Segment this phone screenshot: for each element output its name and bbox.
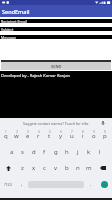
staticText: u [70, 132, 74, 140]
staticText: y [59, 132, 63, 140]
button[interactable]: a [6, 144, 17, 160]
button[interactable]: 9 [88, 128, 99, 144]
button[interactable]: Subject [0, 27, 112, 31]
staticText: r [37, 132, 40, 140]
staticText: c [43, 164, 46, 172]
staticText: d [32, 148, 36, 156]
staticText: 6 [60, 130, 62, 134]
staticText: Recipient Email [1, 19, 27, 23]
staticText: 1 [5, 130, 7, 134]
button[interactable]: . [85, 176, 96, 192]
button[interactable]: h [61, 144, 72, 160]
button[interactable]: 6 [55, 128, 66, 144]
staticText: q [4, 132, 8, 140]
staticText: v [54, 164, 58, 172]
staticText: f [43, 148, 46, 156]
staticText: 9 [93, 130, 95, 134]
button[interactable]: c [39, 160, 50, 176]
button[interactable]: 0 [99, 128, 110, 144]
staticText: 7 [71, 130, 73, 134]
button[interactable]: b [61, 160, 72, 176]
button[interactable]: Message [0, 35, 112, 39]
staticText: Subject [1, 27, 14, 31]
staticText: 3 [27, 130, 29, 134]
staticText: g [54, 148, 58, 156]
button[interactable]: 3 [22, 128, 33, 144]
button[interactable]: f [39, 144, 50, 160]
staticText: t [48, 132, 51, 140]
button[interactable]: z [17, 160, 28, 176]
button[interactable]: d [28, 144, 39, 160]
staticText: i [82, 132, 84, 140]
staticText: , [21, 181, 23, 188]
staticText: x [32, 164, 36, 172]
staticText: b [65, 164, 69, 172]
button[interactable]: k [83, 144, 94, 160]
staticText: 8 [82, 130, 84, 134]
staticText: j [77, 148, 79, 156]
button[interactable]: Voice input [100, 120, 106, 126]
staticText: p [103, 132, 107, 140]
staticText: l [99, 148, 101, 156]
staticText: k [87, 148, 91, 156]
button[interactable]: 5 [44, 128, 55, 144]
button[interactable]: 1 [0, 128, 11, 144]
button[interactable]: Recipient Email [0, 19, 112, 23]
staticText: w [14, 132, 19, 140]
button[interactable]: n [72, 160, 83, 176]
button[interactable]: ?123 [0, 176, 16, 192]
staticText: Message [1, 35, 16, 39]
staticText: Developed by - Rajesh Kumar Ranjan [1, 73, 70, 78]
staticText: 5 [49, 130, 51, 134]
staticText: SEND [51, 64, 62, 69]
staticText: SendEmail [2, 8, 30, 15]
button[interactable]: SEND [1, 60, 111, 70]
staticText: a [10, 148, 14, 156]
staticText: 2 [16, 130, 18, 134]
button[interactable]: v [50, 160, 61, 176]
button[interactable]: l [94, 144, 105, 160]
staticText: 4 [38, 130, 40, 134]
staticText: m [86, 164, 92, 172]
button[interactable]: g [50, 144, 61, 160]
button[interactable]: , [16, 176, 27, 192]
button[interactable]: s [17, 144, 28, 160]
staticText: z [21, 164, 24, 172]
staticText: e [26, 132, 30, 140]
button[interactable]: Enter [96, 176, 112, 192]
staticText: s [21, 148, 24, 156]
button[interactable]: 7 [66, 128, 77, 144]
staticText: n [76, 164, 80, 172]
button[interactable]: x [28, 160, 39, 176]
staticText: ?123 [4, 182, 12, 187]
button[interactable]: Backspace [94, 160, 111, 176]
staticText: h [65, 148, 69, 156]
button[interactable]: 8 [77, 128, 88, 144]
button[interactable]: 4 [33, 128, 44, 144]
staticText: o [92, 132, 96, 140]
button[interactable]: Shift [0, 160, 17, 176]
button[interactable]: 2 [11, 128, 22, 144]
staticText: 0 [104, 130, 106, 134]
button[interactable]: j [72, 144, 83, 160]
staticText: Suggest contact names? Touch for info. [23, 121, 90, 126]
button[interactable]: m [83, 160, 94, 176]
staticText: . [90, 181, 92, 188]
